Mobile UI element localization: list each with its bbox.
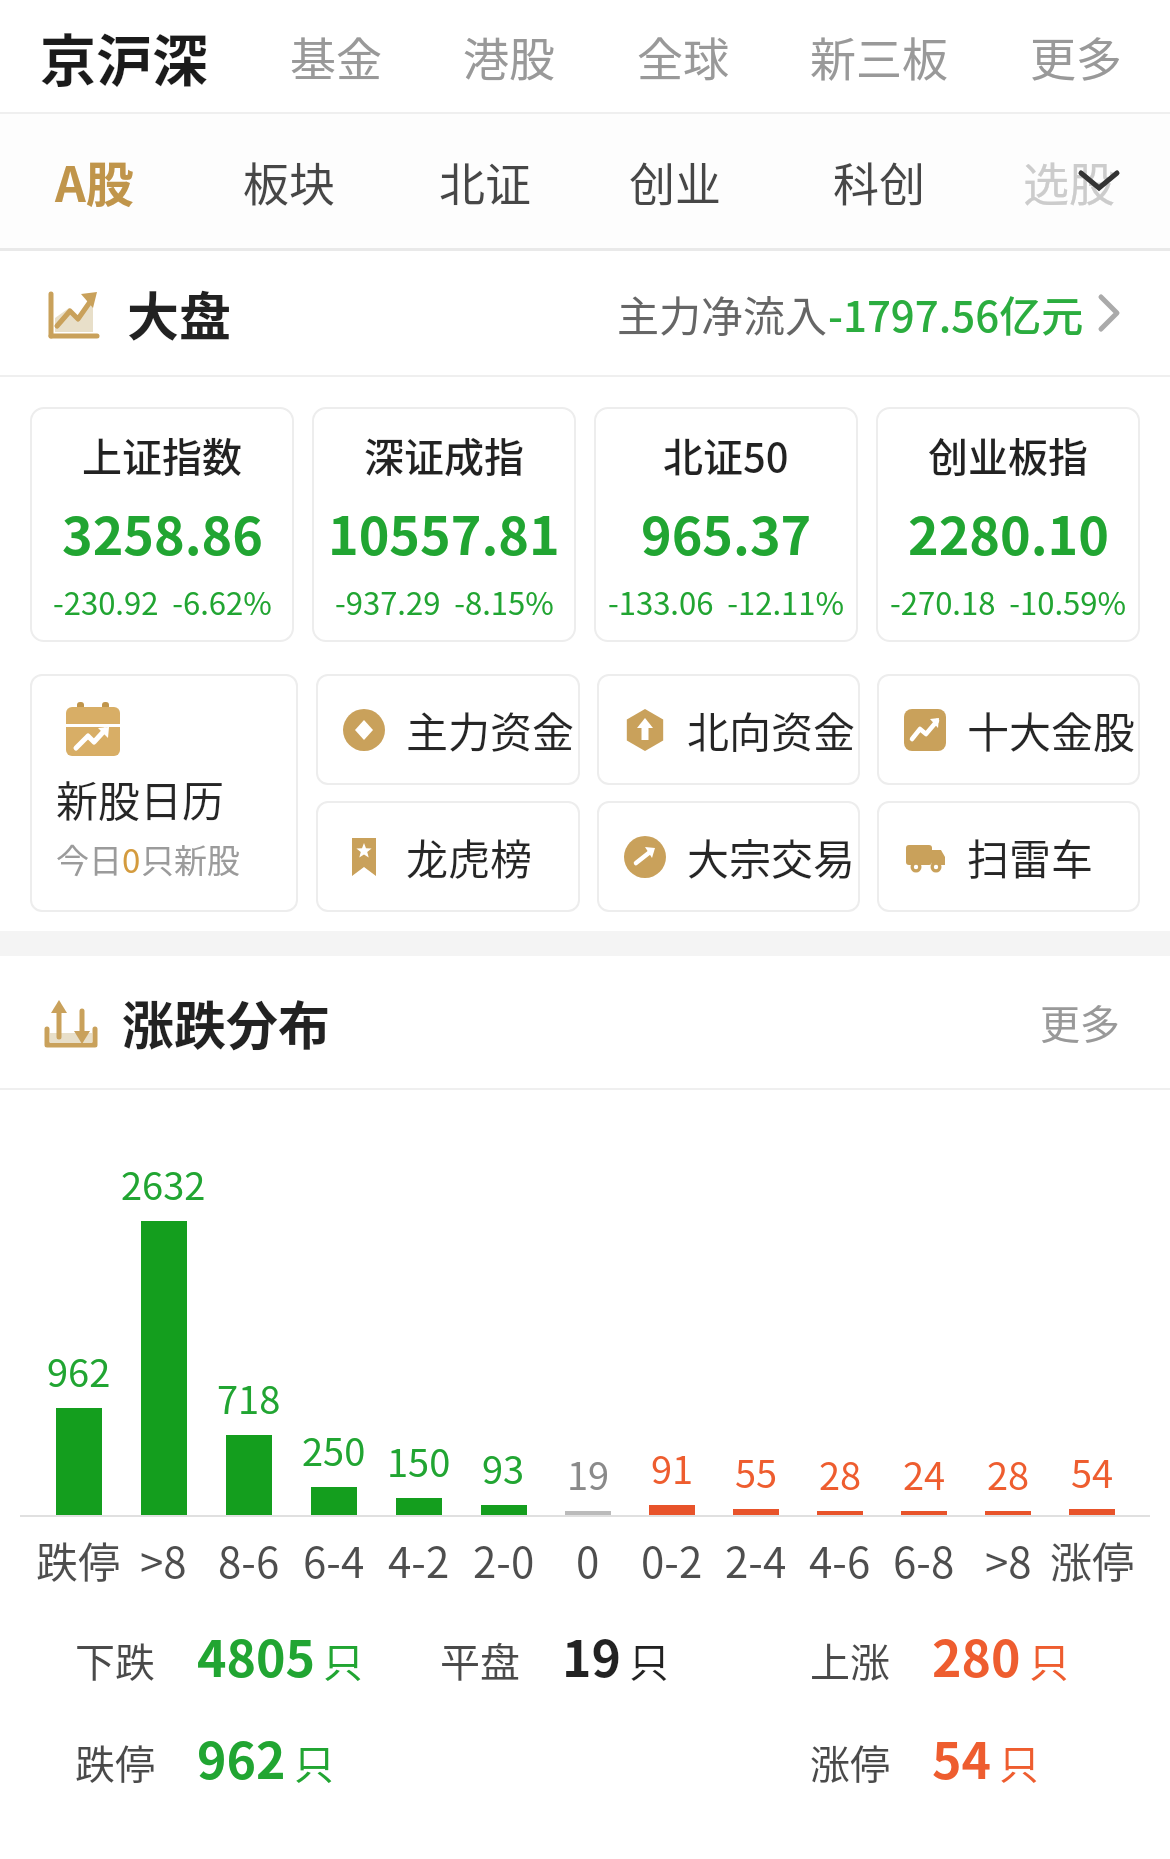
button[interactable]: 港股 [463,23,555,90]
staticText: 2-0 [473,1529,535,1590]
staticText: -1797.56亿元 [828,283,1084,344]
staticText: 19 [567,1446,610,1501]
staticText: 0-2 [641,1529,703,1590]
staticText: 2632 [121,1156,206,1211]
staticText: 十大金股 [967,699,1136,760]
staticText: 19 [562,1619,621,1691]
button[interactable]: 上证指数 [30,407,294,642]
staticText: 8-6 [218,1529,280,1590]
staticText: 只 [294,1733,334,1791]
button[interactable] [1078,170,1120,192]
staticText: 主力资金 [406,699,575,760]
staticText: 跌停 [75,1733,155,1791]
staticText: 龙虎榜 [406,826,533,887]
staticText: 只新股 [141,835,240,883]
staticText: >8 [985,1529,1032,1590]
staticText: 10557.81 [328,495,560,570]
staticText: 只 [999,1733,1039,1791]
staticText: 718 [217,1370,281,1425]
staticText: 涨停 [810,1733,890,1791]
staticText: 平盘 [440,1631,520,1689]
staticText: 2-4 [725,1529,787,1590]
staticText: 4-6 [809,1529,871,1590]
button[interactable]: 大盘 [0,251,1170,375]
button[interactable]: 基金 [290,23,382,90]
staticText: -937.29 -8.15% [335,579,554,624]
staticText: -270.18 -10.59% [890,579,1127,624]
staticText: 0 [122,835,141,883]
button[interactable]: 大宗交易 [597,801,860,912]
button[interactable]: 创业板指 [876,407,1140,642]
button[interactable]: 新股日历 [30,674,298,912]
button[interactable]: 跌停 [75,1721,334,1793]
button[interactable]: 深证成指 [312,407,576,642]
button[interactable]: 新三板 [810,23,948,90]
staticText: 深证成指 [364,426,524,484]
staticText: 北证50 [663,426,789,484]
staticText: 91 [651,1440,694,1495]
staticText: 选股 [1023,148,1115,215]
staticText: 962 [47,1343,111,1398]
staticText: 涨跌分布 [122,985,331,1060]
staticText: 跌停 [36,1529,121,1590]
button[interactable]: 平盘 [440,1619,669,1691]
staticText: 今日 [56,835,122,883]
staticText: 新股日历 [56,768,225,829]
staticText: 2280.10 [908,495,1109,570]
staticText: 3258.86 [62,495,263,570]
button[interactable]: 京沪深 [40,16,208,97]
button[interactable]: 上涨 [810,1619,1069,1691]
staticText: 55 [735,1444,778,1499]
staticText: 大宗交易 [687,826,856,887]
staticText: 创业板指 [928,426,1088,484]
staticText: 965.37 [641,495,812,570]
staticText: 54 [1071,1444,1114,1499]
button[interactable]: 板块 [243,148,335,215]
staticText: 扫雷车 [967,826,1094,887]
staticText: 北向资金 [687,699,856,760]
staticText: 大盘 [127,276,232,351]
staticText: 上证指数 [82,426,242,484]
staticText: 主力净流入 [617,283,828,344]
staticText: 4805 [197,1619,315,1691]
staticText: 28 [819,1446,862,1501]
button[interactable]: 全球 [637,23,729,90]
staticText: 上涨 [810,1631,890,1689]
staticText: 93 [482,1440,525,1495]
button[interactable]: 十大金股 [877,674,1140,785]
button[interactable]: 创业 [629,148,721,215]
staticText: 6-4 [303,1529,365,1590]
staticText: 962 [197,1721,286,1793]
staticText: 下跌 [75,1631,155,1689]
staticText: 280 [932,1619,1021,1691]
staticText: 只 [629,1631,669,1689]
staticText: -230.92 -6.62% [53,579,272,624]
button[interactable]: 涨停 [810,1721,1039,1793]
button[interactable]: A股 [55,146,134,216]
staticText: 24 [903,1446,946,1501]
button[interactable]: 北向资金 [597,674,860,785]
staticText: 28 [987,1446,1030,1501]
staticText: 150 [387,1433,451,1488]
staticText: -133.06 -12.11% [608,579,845,624]
button[interactable]: 更多 [1040,993,1120,1051]
staticText: 0 [576,1529,600,1590]
button[interactable]: 下跌 [75,1619,363,1691]
staticText: 250 [302,1422,366,1477]
staticText: 只 [323,1631,363,1689]
button[interactable]: 主力资金 [316,674,580,785]
button[interactable]: 龙虎榜 [316,801,580,912]
staticText: 54 [932,1721,991,1793]
staticText: 4-2 [388,1529,450,1590]
staticText: 6-8 [893,1529,955,1590]
button[interactable]: 科创 [833,148,925,215]
button[interactable]: 更多 [1030,23,1122,90]
button[interactable]: 扫雷车 [877,801,1140,912]
staticText: 只 [1029,1631,1069,1689]
button[interactable]: 北证50 [594,407,858,642]
staticText: 涨停 [1050,1529,1134,1590]
button[interactable]: 北证 [439,148,531,215]
staticText: >8 [140,1529,187,1590]
